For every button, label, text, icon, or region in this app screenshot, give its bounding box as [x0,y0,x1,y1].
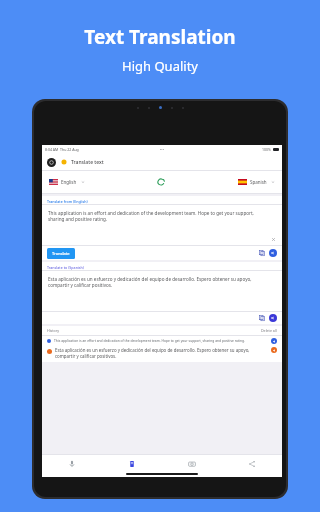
staticText: This application is an effort and dedica… [48,210,268,223]
button[interactable]: Swap languages [154,175,168,189]
staticText: 8:04 AM Thu 22 Aug [45,147,79,152]
button[interactable]: Camera [162,455,222,477]
button[interactable]: Listen [269,249,277,257]
staticText: Translate to (Spanish) [47,265,84,270]
button[interactable]: Listen [271,347,277,353]
button[interactable]: Listen [271,338,277,344]
button[interactable]: Delete all [261,328,277,333]
staticText: This application is an effort and dedica… [54,338,268,342]
button[interactable]: English [47,177,87,187]
staticText: Translate from (English) [47,199,88,204]
staticText: Esta aplicación es un esfuerzo y dedicac… [48,276,272,289]
staticText: Translate [52,251,70,256]
button[interactable]: Listen [269,314,277,322]
staticText: Translate text [71,159,104,166]
button[interactable]: Clear text [271,237,276,242]
staticText: Text Translation [84,24,236,50]
button[interactable]: Esta aplicación es un esfuerzo y dedicac… [42,346,282,362]
button[interactable]: Spanish [236,177,277,187]
staticText: 100% [262,147,271,152]
staticText: Delete all [261,328,277,333]
button[interactable]: Menu [47,158,56,167]
staticText: ••• [160,147,164,152]
button[interactable]: Translate [47,248,75,259]
button[interactable]: Share [222,455,282,477]
button[interactable]: Copy [259,250,265,256]
staticText: English [61,179,77,185]
staticText: History [47,328,60,333]
button[interactable]: Text [102,455,162,477]
staticText: High Quality [122,57,198,75]
button[interactable]: Voice [42,455,102,477]
staticText: Spanish [250,179,267,185]
button[interactable]: This application is an effort and dedica… [42,336,282,346]
button[interactable]: Copy [259,315,265,321]
staticText: Esta aplicación es un esfuerzo y dedicac… [55,347,268,359]
